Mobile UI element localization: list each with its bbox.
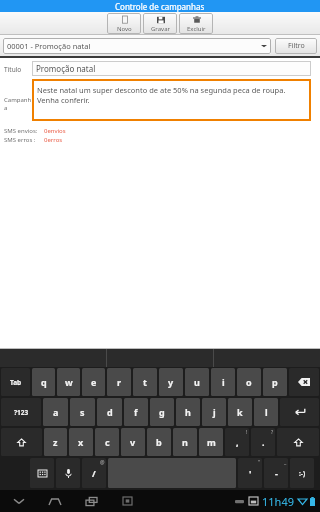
button[interactable]: s (70, 398, 95, 426)
button[interactable]: y (159, 368, 183, 396)
staticText: t (143, 376, 147, 388)
staticText: 00001 - Promoção natal (7, 41, 261, 51)
staticText: :-) (299, 469, 306, 478)
staticText: ?123 (14, 408, 29, 417)
staticText: - (275, 467, 278, 479)
button[interactable]: z (44, 428, 67, 456)
staticText: s (80, 406, 85, 418)
staticText: Gravar (151, 25, 170, 33)
button[interactable]: Shift (1, 428, 42, 456)
staticText: u (194, 376, 200, 388)
staticText: Filtro (288, 41, 305, 51)
staticText: ? (271, 429, 274, 436)
button[interactable]: Hide keyboard (8, 490, 30, 512)
button[interactable]: u (185, 368, 209, 396)
staticText: Promoção natal (36, 63, 96, 74)
staticText: Neste natal um super desconto de ate 50%… (37, 85, 286, 105)
button[interactable]: Recent apps (80, 490, 102, 512)
staticText: 0envios (44, 127, 66, 135)
button[interactable]: c (95, 428, 119, 456)
staticText: y (168, 376, 174, 388)
button[interactable]: Excluir (179, 13, 213, 34)
button[interactable]: m (199, 428, 223, 456)
button[interactable]: r (107, 368, 131, 396)
staticText: k (237, 406, 243, 418)
button[interactable]: Backspace (289, 368, 319, 396)
staticText: e (91, 376, 97, 388)
button[interactable]: g (150, 398, 174, 426)
button[interactable]: k (228, 398, 252, 426)
button[interactable]: Filtro (275, 38, 317, 54)
button[interactable]: Promoção natal (32, 61, 311, 76)
staticText: d (107, 406, 113, 418)
staticText: @ (100, 459, 105, 466)
button[interactable]: - (264, 458, 288, 488)
button[interactable]: Switch keyboard (116, 490, 138, 512)
staticText: j (213, 406, 216, 418)
staticText: Excluir (187, 25, 206, 33)
staticText: Campanha (4, 96, 32, 112)
button[interactable]: o (237, 368, 261, 396)
staticText: _ (284, 459, 287, 466)
button[interactable]: , (225, 428, 249, 456)
staticText: SMS erros : (4, 136, 44, 144)
staticText: " (258, 459, 261, 466)
button[interactable]: Voice input (56, 458, 80, 488)
staticText: x (78, 436, 84, 448)
staticText: 11h49 (262, 494, 294, 509)
button[interactable]: n (173, 428, 197, 456)
button[interactable]: Neste natal um super desconto de ate 50%… (32, 79, 311, 121)
button[interactable]: p (263, 368, 287, 396)
staticText: c (105, 436, 110, 448)
staticText: Título (4, 65, 32, 74)
button[interactable]: / (82, 458, 106, 488)
button[interactable]: d (97, 398, 122, 426)
staticText: w (65, 376, 73, 388)
staticText: f (134, 406, 138, 418)
button[interactable]: Novo (107, 13, 141, 34)
button[interactable]: f (124, 398, 148, 426)
staticText: i (222, 376, 225, 388)
button[interactable]: Keyboard settings (30, 458, 54, 488)
button[interactable]: w (57, 368, 80, 396)
button[interactable]: x (69, 428, 93, 456)
button[interactable]: i (211, 368, 235, 396)
button[interactable]: q (32, 368, 55, 396)
staticText: z (53, 436, 58, 448)
staticText: Controle de campanhas (115, 1, 205, 12)
staticText: Tab (10, 378, 22, 387)
button[interactable]: ' (238, 458, 262, 488)
staticText: . (262, 436, 265, 448)
button[interactable]: Gravar (143, 13, 177, 34)
button[interactable]: Home (44, 490, 66, 512)
button[interactable]: Enter (280, 398, 319, 426)
button[interactable]: Shift (277, 428, 319, 456)
button[interactable]: j (202, 398, 226, 426)
staticText: ! (246, 429, 248, 436)
button[interactable]: h (176, 398, 200, 426)
button[interactable]: b (147, 428, 171, 456)
staticText: SMS envios: (4, 127, 44, 135)
staticText: g (159, 406, 165, 418)
staticText: b (156, 436, 162, 448)
staticText: 0erros (44, 136, 63, 144)
button[interactable]: . (251, 428, 275, 456)
staticText: v (130, 436, 136, 448)
staticText: ' (249, 467, 252, 479)
button[interactable]: a (43, 398, 68, 426)
button[interactable]: v (121, 428, 145, 456)
button[interactable]: e (82, 368, 105, 396)
staticText: l (265, 406, 268, 418)
staticText: q (41, 376, 47, 388)
button[interactable]: Tab (1, 368, 30, 396)
button[interactable]: 00001 - Promoção natal (3, 38, 271, 54)
button[interactable]: ?123 (1, 398, 41, 426)
button[interactable]: l (254, 398, 278, 426)
staticText: p (272, 376, 278, 388)
button[interactable]: t (133, 368, 157, 396)
staticText: a (53, 406, 59, 418)
staticText: h (185, 406, 191, 418)
staticText: , (236, 436, 239, 448)
button[interactable]: :-) (290, 458, 314, 488)
